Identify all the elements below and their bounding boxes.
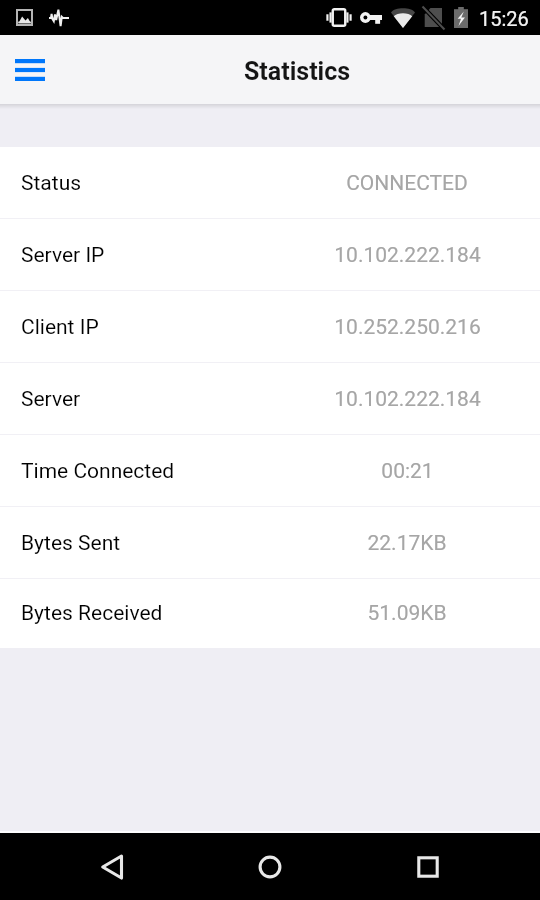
staticText: Statistics xyxy=(244,57,351,86)
staticText: 51.09KB xyxy=(367,601,447,626)
button[interactable]: Home xyxy=(224,833,316,900)
staticText: 22.17KB xyxy=(367,531,447,556)
button[interactable]: Client IP xyxy=(0,291,540,363)
button[interactable]: Open navigation menu xyxy=(0,35,54,104)
staticText: Client IP xyxy=(21,315,99,340)
button[interactable]: Time Connected xyxy=(0,435,540,507)
staticText: Status xyxy=(21,171,82,196)
button[interactable]: Bytes Sent xyxy=(0,507,540,579)
staticText: Bytes Sent xyxy=(21,531,121,556)
button[interactable]: Server xyxy=(0,363,540,435)
staticText: 10.252.250.216 xyxy=(334,315,481,340)
staticText: Bytes Received xyxy=(21,601,163,626)
staticText: 10.102.222.184 xyxy=(334,243,481,268)
staticText: CONNECTED xyxy=(346,171,468,196)
staticText: Time Connected xyxy=(21,459,175,484)
staticText: 00:21 xyxy=(381,459,434,484)
staticText: Server xyxy=(21,387,81,412)
button[interactable]: Recent apps xyxy=(316,833,540,900)
button[interactable]: Back xyxy=(0,833,224,900)
button[interactable]: Bytes Received xyxy=(0,579,540,648)
staticText: Server IP xyxy=(21,243,105,268)
button[interactable]: Status xyxy=(0,147,540,219)
staticText: 15:26 xyxy=(479,7,529,30)
button[interactable]: Server IP xyxy=(0,219,540,291)
staticText: 10.102.222.184 xyxy=(334,387,481,412)
